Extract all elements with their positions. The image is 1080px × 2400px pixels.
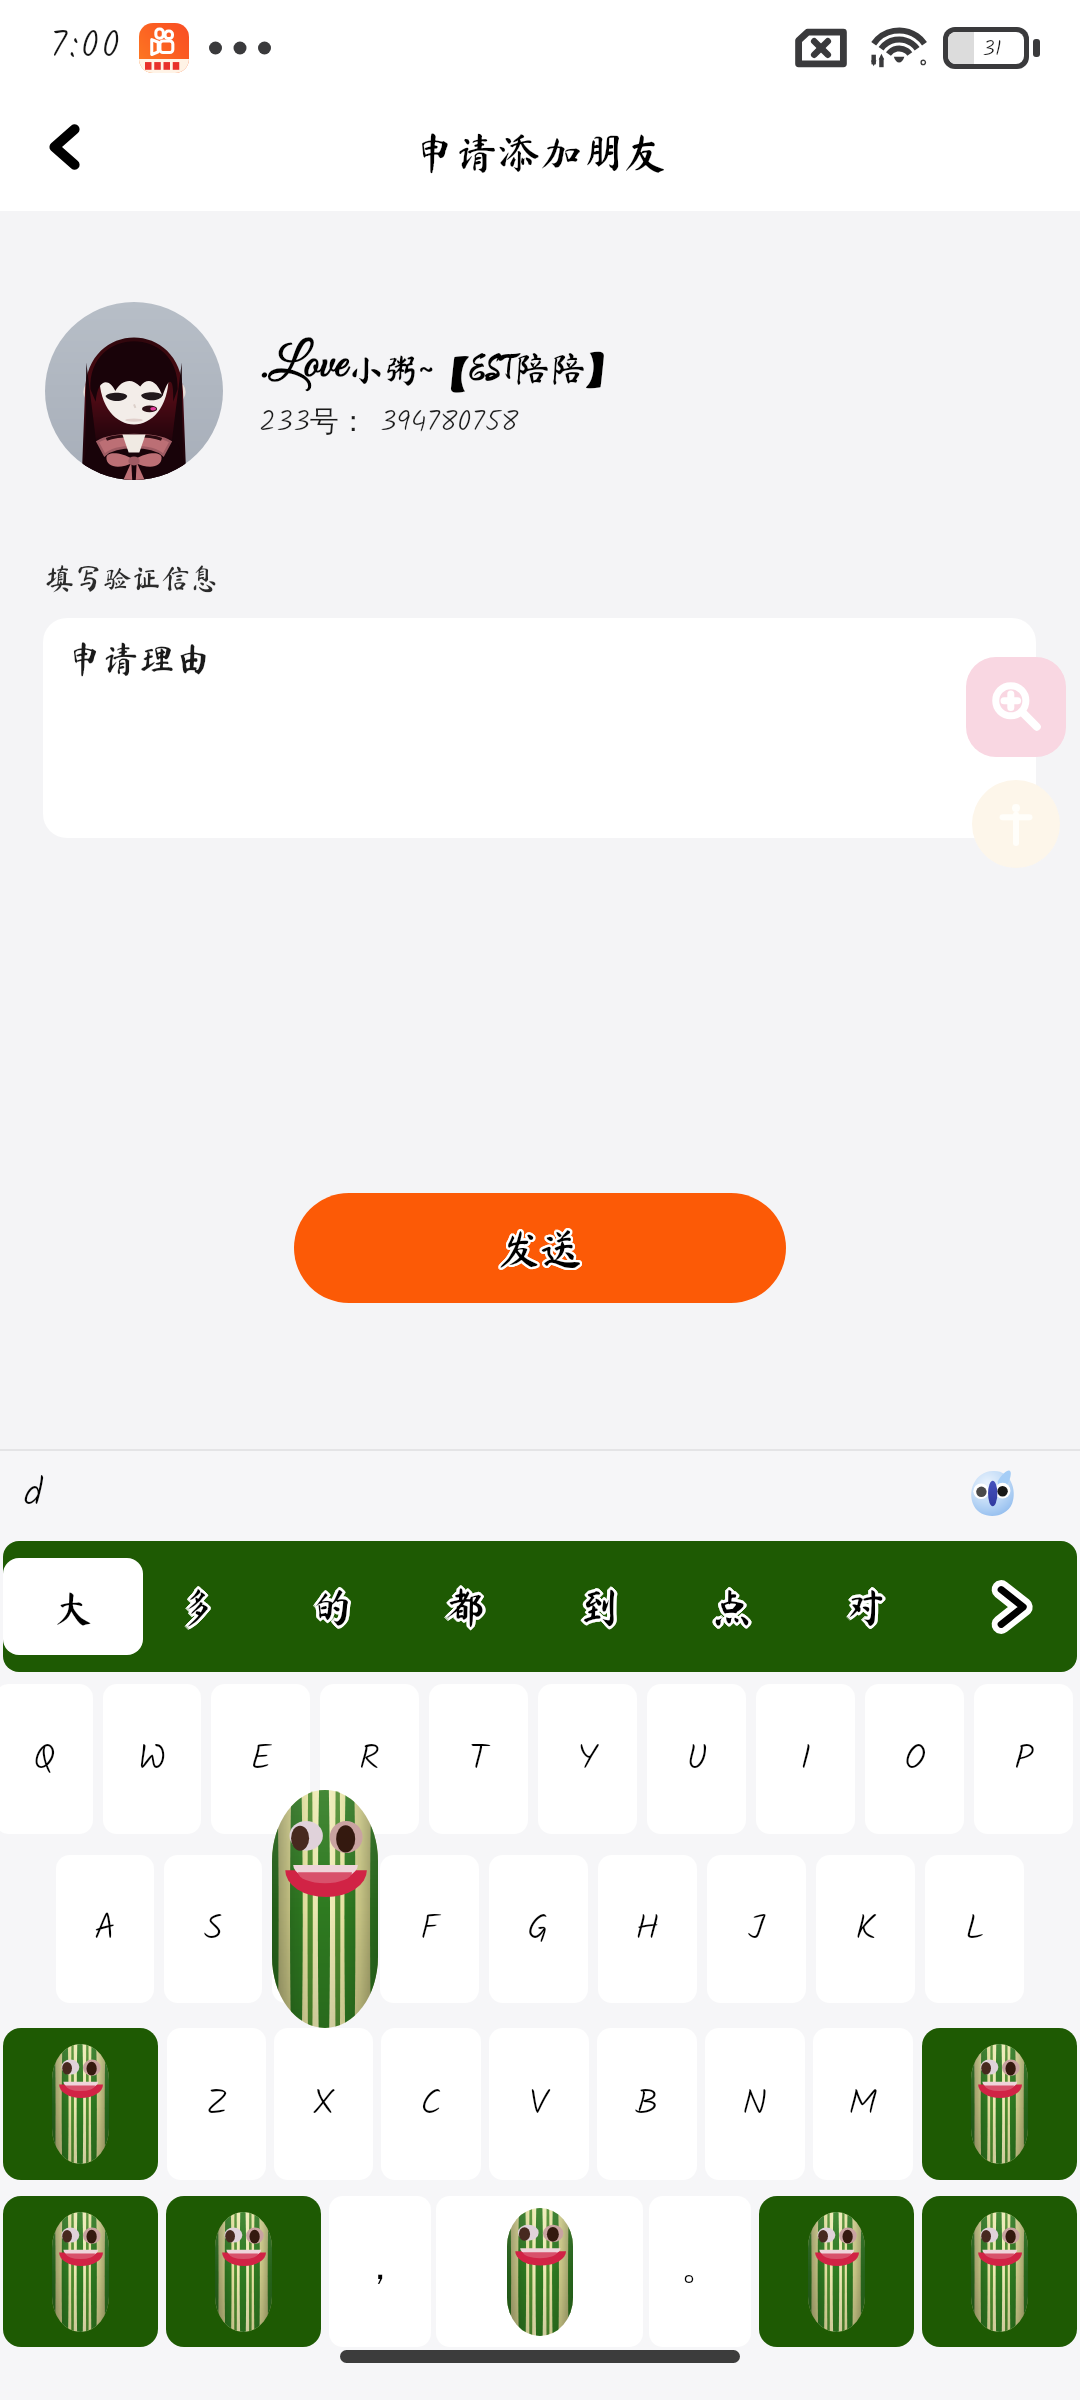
button[interactable]: 申请理由 xyxy=(43,618,1036,838)
staticText: 都 xyxy=(445,1590,485,1630)
staticText: 到 xyxy=(577,1588,617,1628)
staticText: 发送 xyxy=(496,1227,581,1269)
button[interactable]: M xyxy=(813,2028,913,2180)
staticText: 点 xyxy=(712,1584,752,1624)
button[interactable]: B xyxy=(597,2028,697,2180)
button[interactable]: N xyxy=(705,2028,805,2180)
button[interactable]: 。 xyxy=(649,2196,751,2347)
button[interactable]: I xyxy=(756,1684,855,1834)
button[interactable]: Q xyxy=(0,1684,93,1834)
button[interactable]: Accessibility xyxy=(972,780,1060,868)
staticText: 对 xyxy=(844,1586,884,1626)
button[interactable]: H xyxy=(598,1855,697,2003)
button[interactable]: Emoji xyxy=(922,2196,1077,2347)
staticText: 小粥~【EST陪陪】 xyxy=(347,350,623,386)
button[interactable]: W xyxy=(103,1684,201,1834)
button[interactable]: Zoom in xyxy=(966,657,1066,757)
staticText: 的 xyxy=(311,1589,351,1629)
staticText: B xyxy=(635,2076,659,2133)
staticText: 31 xyxy=(982,32,1002,64)
button[interactable]: T xyxy=(429,1684,528,1834)
staticText: 到 xyxy=(578,1589,618,1629)
staticText: 对 xyxy=(846,1590,886,1630)
button[interactable]: Switch language xyxy=(166,2196,321,2347)
button[interactable]: J xyxy=(707,1855,806,2003)
button[interactable]: 都 xyxy=(422,1541,508,1672)
staticText: 发送 xyxy=(496,1228,581,1270)
staticText: 都 xyxy=(444,1585,484,1625)
button[interactable]: O xyxy=(865,1684,964,1834)
staticText: Q xyxy=(33,1731,56,1788)
staticText: 的 xyxy=(312,1584,352,1624)
staticText: 点 xyxy=(714,1586,754,1626)
button[interactable]: d xyxy=(14,1462,84,1528)
staticText: 的 xyxy=(314,1588,354,1628)
staticText: T xyxy=(469,1731,489,1788)
button[interactable]: K xyxy=(816,1855,915,2003)
button[interactable]: 的 xyxy=(289,1541,375,1672)
button[interactable]: R xyxy=(320,1684,419,1834)
staticText: 到 xyxy=(579,1587,619,1627)
staticText: 点 xyxy=(713,1589,753,1629)
staticText: 点 xyxy=(711,1585,751,1625)
staticText: 都 xyxy=(447,1586,487,1626)
staticText: 点 xyxy=(713,1585,753,1625)
staticText: 发送 xyxy=(498,1229,583,1271)
staticText: 多 xyxy=(175,1587,215,1627)
button[interactable]: 大 xyxy=(3,1558,143,1655)
staticText: 多 xyxy=(177,1589,217,1629)
button[interactable]: V xyxy=(489,2028,589,2180)
staticText: 对 xyxy=(845,1589,885,1629)
button[interactable]: 到 xyxy=(556,1541,642,1672)
staticText: E xyxy=(250,1731,272,1788)
staticText: 对 xyxy=(847,1589,887,1629)
staticText: Z xyxy=(206,2076,228,2133)
staticText: R xyxy=(359,1731,380,1788)
button[interactable]: Backspace xyxy=(922,2028,1077,2180)
button[interactable]: P xyxy=(974,1684,1073,1834)
button[interactable]: D xyxy=(272,1855,370,2003)
button[interactable]: ， xyxy=(329,2196,431,2347)
button[interactable]: Enter xyxy=(759,2196,914,2347)
button[interactable]: F xyxy=(380,1855,479,2003)
staticText: K xyxy=(855,1901,877,1958)
button[interactable]: More candidates xyxy=(975,1571,1047,1643)
button[interactable]: S xyxy=(164,1855,262,2003)
button[interactable]: Y xyxy=(538,1684,637,1834)
staticText: 发送 xyxy=(500,1227,585,1269)
staticText: V xyxy=(529,2076,549,2133)
staticText: 233号： 394780758 xyxy=(259,400,519,446)
staticText: O xyxy=(904,1731,926,1788)
staticText: 对 xyxy=(846,1587,886,1627)
button[interactable]: 点 xyxy=(689,1541,775,1672)
staticText: 到 xyxy=(580,1589,620,1629)
staticText: 发送 xyxy=(498,1227,583,1269)
staticText: 发送 xyxy=(496,1226,581,1268)
staticText: 申请理由 xyxy=(67,640,212,676)
button[interactable]: 发送 xyxy=(294,1193,786,1303)
button[interactable]: X xyxy=(274,2028,373,2180)
button[interactable]: 多 xyxy=(155,1541,241,1672)
button[interactable]: Shift xyxy=(3,2028,158,2180)
staticText: 对 xyxy=(843,1587,883,1627)
button[interactable]: Space xyxy=(436,2196,643,2347)
button[interactable]: G xyxy=(489,1855,588,2003)
staticText: 发送 xyxy=(497,1229,582,1271)
staticText: 的 xyxy=(311,1585,351,1625)
staticText: 到 xyxy=(579,1590,619,1630)
button[interactable]: Z xyxy=(167,2028,266,2180)
button[interactable]: Symbols xyxy=(3,2196,158,2347)
button[interactable]: 对 xyxy=(823,1541,909,1672)
button[interactable]: U xyxy=(647,1684,746,1834)
button[interactable]: A xyxy=(56,1855,154,2003)
staticText: .Love xyxy=(259,335,347,395)
staticText: 发送 xyxy=(498,1225,583,1267)
staticText: 到 xyxy=(579,1584,619,1624)
button[interactable]: Back xyxy=(25,107,105,187)
button[interactable]: L xyxy=(925,1855,1024,2003)
button[interactable]: Voice input xyxy=(962,1462,1024,1524)
button[interactable]: E xyxy=(211,1684,310,1834)
staticText: 到 xyxy=(576,1587,616,1627)
button[interactable]: C xyxy=(381,2028,481,2180)
staticText: 多 xyxy=(180,1586,220,1626)
